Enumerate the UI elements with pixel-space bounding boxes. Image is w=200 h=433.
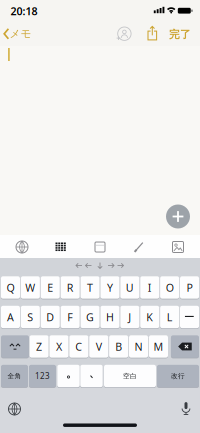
staticText: D (46, 310, 54, 324)
button[interactable]: U (120, 276, 139, 299)
button[interactable]: A (1, 305, 20, 329)
button[interactable] (80, 364, 102, 388)
button[interactable]: M (149, 335, 168, 358)
button[interactable]: Q (1, 276, 20, 299)
button[interactable] (171, 335, 199, 358)
staticText: X (56, 339, 62, 354)
button[interactable]: メモ (1, 26, 33, 42)
button[interactable] (115, 26, 132, 42)
button[interactable]: T (80, 276, 100, 299)
staticText: W (25, 280, 35, 295)
button[interactable]: G (80, 305, 100, 329)
button[interactable] (133, 241, 145, 253)
button[interactable] (74, 261, 94, 269)
button[interactable] (147, 25, 158, 41)
button[interactable]: H (100, 305, 119, 329)
staticText: N (135, 339, 143, 354)
button[interactable]: D (41, 305, 60, 329)
staticText: 空白 (123, 372, 137, 380)
button[interactable] (8, 402, 21, 415)
button[interactable] (1, 335, 29, 358)
button[interactable]: 全角 (1, 364, 28, 388)
button[interactable]: I (140, 276, 159, 299)
button[interactable]: 改行 (157, 364, 199, 388)
button[interactable]: O (160, 276, 179, 299)
button[interactable] (166, 204, 190, 228)
button[interactable] (57, 364, 79, 388)
staticText: T (87, 280, 93, 295)
staticText: E (47, 280, 53, 295)
staticText: J (128, 310, 131, 324)
staticText: M (153, 339, 163, 354)
staticText: S (27, 310, 33, 324)
button[interactable]: E (41, 276, 60, 299)
staticText: L (167, 310, 173, 324)
staticText: C (75, 339, 82, 354)
staticText: B (115, 339, 122, 354)
staticText: 全角 (7, 372, 21, 380)
staticText: Y (107, 280, 113, 295)
staticText: 123 (35, 371, 50, 381)
button[interactable]: Z (29, 335, 49, 358)
staticText: 20:18 (10, 4, 37, 18)
button[interactable]: W (21, 276, 40, 299)
button[interactable]: P (180, 276, 199, 299)
staticText: O (166, 280, 174, 295)
staticText: P (186, 280, 192, 295)
button[interactable] (15, 240, 28, 253)
staticText: ー (184, 310, 195, 323)
button[interactable]: V (89, 335, 108, 358)
button[interactable] (55, 242, 66, 251)
staticText: U (126, 280, 134, 295)
button[interactable] (96, 262, 103, 269)
button[interactable] (95, 242, 105, 252)
staticText: 改行 (171, 372, 185, 380)
staticText: 完了 (169, 28, 191, 41)
button[interactable] (106, 261, 126, 269)
staticText: I (148, 280, 152, 295)
staticText: Z (36, 339, 42, 354)
staticText: R (67, 280, 74, 295)
button[interactable] (172, 241, 183, 252)
button[interactable]: S (21, 305, 40, 329)
staticText: V (96, 339, 102, 354)
button[interactable]: 123 (29, 364, 56, 388)
button[interactable] (180, 401, 191, 415)
button[interactable]: C (69, 335, 88, 358)
button[interactable]: N (129, 335, 148, 358)
staticText: Q (6, 280, 14, 295)
staticText: A (7, 310, 14, 324)
button[interactable]: R (61, 276, 80, 299)
button[interactable]: X (49, 335, 68, 358)
button[interactable]: K (140, 305, 159, 329)
button[interactable]: 完了 (167, 27, 193, 41)
staticText: G (86, 310, 94, 324)
button[interactable]: J (120, 305, 139, 329)
button[interactable]: L (160, 305, 179, 329)
button[interactable]: 空白 (104, 364, 156, 388)
staticText: F (67, 310, 73, 324)
button[interactable]: F (61, 305, 80, 329)
staticText: K (146, 310, 153, 324)
button[interactable]: B (109, 335, 128, 358)
staticText: メモ (9, 27, 31, 40)
button[interactable]: Y (100, 276, 119, 299)
button[interactable]: ー (180, 305, 199, 329)
staticText: H (106, 310, 114, 324)
